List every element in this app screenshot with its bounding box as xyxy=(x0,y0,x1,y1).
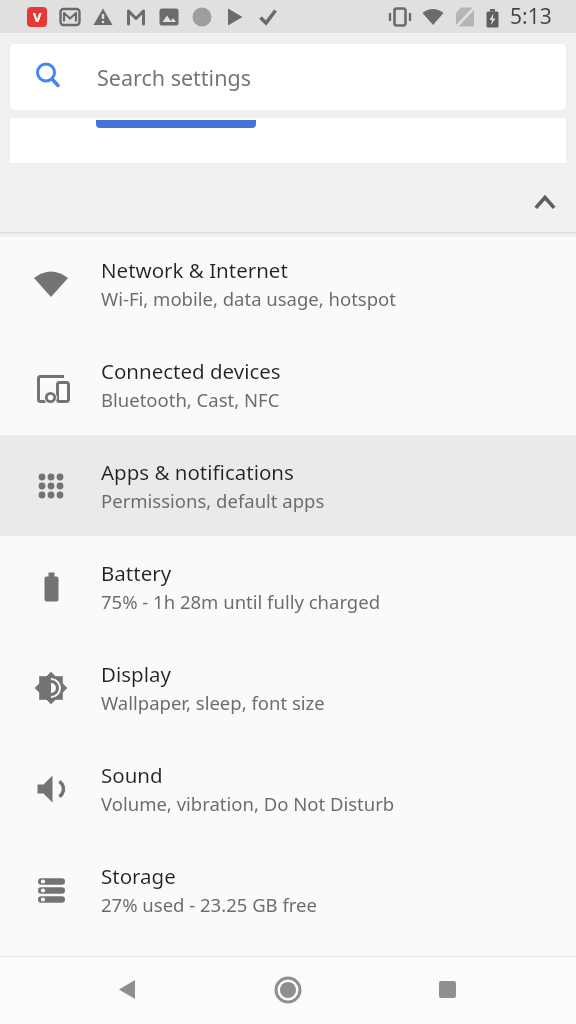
staticText: Search settings xyxy=(97,63,251,92)
staticText: Battery xyxy=(101,559,172,587)
staticText: Wi-Fi, mobile, data usage, hotspot xyxy=(101,286,396,311)
button[interactable] xyxy=(268,970,308,1010)
staticText: Volume, vibration, Do Not Disturb xyxy=(101,791,395,816)
button[interactable] xyxy=(108,970,148,1010)
button[interactable] xyxy=(525,182,565,222)
button[interactable] xyxy=(428,970,468,1010)
button[interactable]: Connected devices xyxy=(0,334,576,435)
staticText: V xyxy=(33,8,42,26)
button[interactable]: Apps & notifications xyxy=(0,435,576,536)
staticText: 75% - 1h 28m until fully charged xyxy=(101,589,381,614)
staticText: Permissions, default apps xyxy=(101,488,325,513)
button[interactable]: Network & Internet xyxy=(0,233,576,334)
button[interactable]: Battery xyxy=(0,536,576,637)
button[interactable]: Display xyxy=(0,637,576,738)
button[interactable]: Storage xyxy=(0,839,576,940)
button[interactable]: Search settings xyxy=(10,44,566,110)
staticText: Network & Internet xyxy=(101,256,288,284)
staticText: Apps & notifications xyxy=(101,458,294,486)
staticText: 27% used - 23.25 GB free xyxy=(101,892,317,917)
staticText: 5:13 xyxy=(510,2,552,31)
staticText: Sound xyxy=(101,761,163,789)
staticText: Display xyxy=(101,660,171,688)
staticText: Storage xyxy=(101,862,176,890)
button[interactable]: Sound xyxy=(0,738,576,839)
staticText: Bluetooth, Cast, NFC xyxy=(101,387,280,412)
staticText: Wallpaper, sleep, font size xyxy=(101,690,325,715)
staticText: Connected devices xyxy=(101,357,281,385)
